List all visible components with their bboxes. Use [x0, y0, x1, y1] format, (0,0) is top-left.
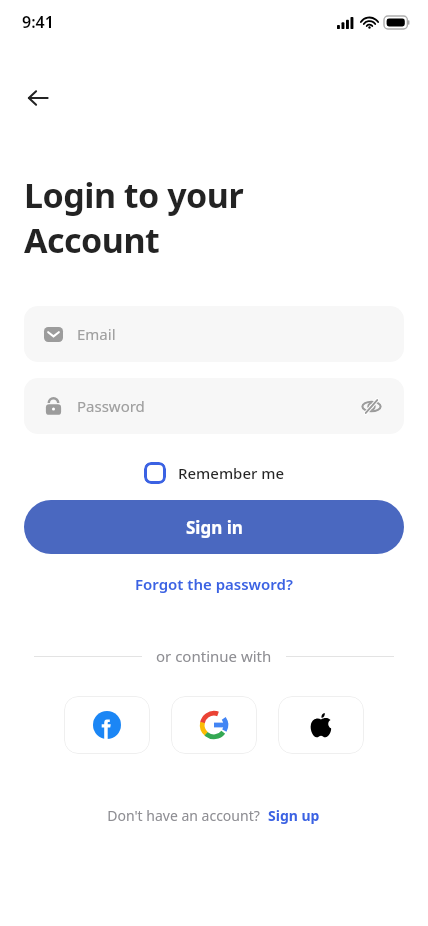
- button[interactable]: Sign up: [266, 802, 322, 829]
- button[interactable]: Back: [14, 74, 62, 122]
- button[interactable]: Show password: [358, 393, 384, 419]
- staticText: Sign in: [186, 516, 243, 539]
- staticText: 9:41: [22, 11, 54, 33]
- staticText: Forgot the password?: [135, 574, 293, 594]
- staticText: Don't have an account?: [107, 806, 260, 825]
- button[interactable]: Remember me: [140, 456, 289, 490]
- button[interactable]: Sign in with Apple: [278, 696, 364, 754]
- button[interactable]: Sign in with Google: [171, 696, 257, 754]
- staticText: Password: [77, 396, 145, 416]
- button[interactable]: Password: [24, 378, 404, 434]
- staticText: Email: [77, 324, 116, 344]
- staticText: or continue with: [156, 646, 272, 666]
- button[interactable]: Sign in with Facebook: [64, 696, 150, 754]
- button[interactable]: Email: [24, 306, 404, 362]
- button[interactable]: Forgot the password?: [125, 568, 303, 600]
- staticText: Remember me: [178, 463, 285, 483]
- staticText: Login to your Account: [24, 172, 244, 262]
- button[interactable]: Sign in: [24, 500, 404, 554]
- staticText: Sign up: [268, 806, 320, 825]
